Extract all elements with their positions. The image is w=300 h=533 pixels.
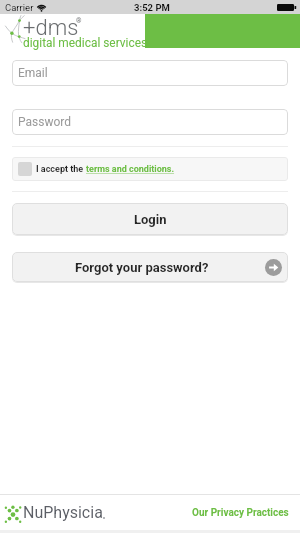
staticText: digital medical services [23, 36, 148, 50]
button[interactable]: NuPhysicia [2, 503, 112, 525]
staticText: +dms [23, 15, 79, 41]
button[interactable]: Password [12, 109, 288, 135]
staticText: Our Privacy Practices [192, 507, 289, 519]
staticText: 3:52 PM [134, 2, 170, 13]
button[interactable]: Forgot your password? [12, 252, 288, 282]
button[interactable]: Our Privacy Practices [188, 503, 293, 523]
staticText: terms and conditions. [86, 164, 175, 175]
staticText: Login [134, 212, 167, 227]
button[interactable]: Email [12, 60, 288, 86]
staticText: Password [18, 115, 72, 129]
button[interactable]: I accept the [12, 157, 288, 181]
staticText: I accept the [36, 164, 86, 175]
staticText: ® [76, 17, 82, 25]
staticText: Forgot your password? [75, 260, 209, 275]
staticText: Email [18, 66, 48, 80]
button[interactable]: Login [12, 203, 288, 235]
staticText: NuPhysicia [23, 503, 103, 522]
staticText: Carrier [5, 2, 34, 13]
other: Forgot your password [265, 259, 282, 276]
